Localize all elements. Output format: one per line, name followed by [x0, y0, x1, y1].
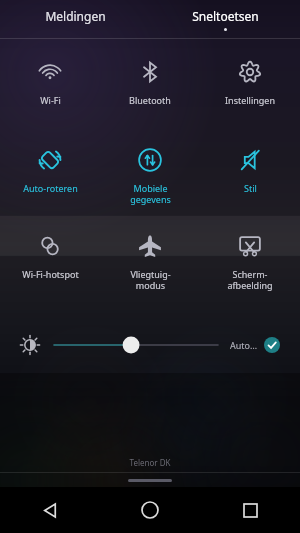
button[interactable]: Auto-roteren [0, 141, 100, 213]
other: Brightness [20, 335, 40, 355]
staticText: Wi-Fi-hotspot [22, 268, 79, 280]
button[interactable]: Vliegtuig- modus [100, 227, 200, 299]
button[interactable]: Recent apps [200, 487, 300, 533]
button[interactable] [54, 331, 218, 359]
staticText: Telenor DK [0, 457, 300, 468]
button[interactable]: Home [100, 487, 200, 533]
button[interactable]: Wi-Fi [0, 53, 100, 125]
staticText: Instellingen [225, 94, 275, 106]
button[interactable]: Mobiele gegevens [100, 141, 200, 213]
staticText: Mobiele gegevens [130, 182, 171, 206]
staticText: Sneltoetsen [192, 8, 259, 24]
button[interactable]: Wi-Fi-hotspot [0, 227, 100, 299]
button[interactable]: Back [0, 487, 100, 533]
staticText: Vliegtuig- modus [130, 268, 171, 292]
staticText: Scherm- afbeelding [227, 268, 273, 292]
staticText: Meldingen [45, 8, 106, 24]
button[interactable]: Bluetooth [100, 53, 200, 125]
staticText: Wi-Fi [40, 94, 61, 106]
button[interactable]: Auto… [230, 337, 280, 353]
button[interactable]: Meldingen [0, 0, 150, 38]
button[interactable]: Instellingen [200, 53, 300, 125]
staticText: Stil [244, 182, 257, 194]
button[interactable]: Scherm- afbeelding [200, 227, 300, 299]
button[interactable]: Stil [200, 141, 300, 213]
staticText: Bluetooth [129, 94, 171, 106]
button[interactable]: Sneltoetsen [150, 0, 300, 38]
staticText: Auto-roteren [23, 182, 78, 194]
staticText: Auto… [230, 339, 258, 351]
